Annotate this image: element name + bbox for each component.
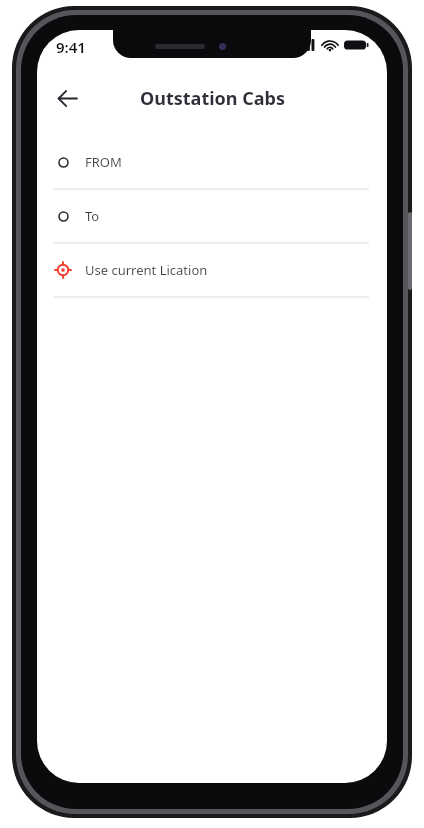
staticText: FROM bbox=[85, 153, 122, 171]
staticText: Use current Lication bbox=[85, 261, 208, 279]
button[interactable]: Back bbox=[47, 78, 87, 118]
staticText: 9:41 bbox=[56, 37, 86, 57]
staticText: Outstation Cabs bbox=[140, 86, 285, 111]
button[interactable]: Use current Lication bbox=[37, 244, 387, 296]
staticText: To bbox=[85, 207, 100, 225]
button[interactable]: To bbox=[37, 190, 387, 242]
button[interactable]: FROM bbox=[37, 136, 387, 188]
